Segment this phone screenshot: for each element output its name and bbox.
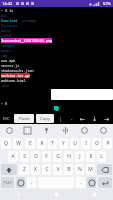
button[interactable]: Backspace <box>97 164 112 175</box>
staticText: Pictures <box>1 23 18 28</box>
button[interactable]: Y <box>59 138 68 149</box>
button[interactable]: ?123 <box>1 177 14 188</box>
button[interactable]: Shift <box>1 164 17 175</box>
staticText: P <box>106 140 110 147</box>
button[interactable]: Recents <box>75 189 113 200</box>
staticText: W <box>16 140 21 147</box>
button[interactable]: K <box>86 151 95 162</box>
button[interactable]: Voice input <box>37 124 56 137</box>
button[interactable]: Home <box>37 189 75 200</box>
button[interactable]: L <box>97 151 106 162</box>
button[interactable]: Paste <box>14 114 34 123</box>
button[interactable]: Q <box>1 138 11 149</box>
staticText: B <box>67 166 71 173</box>
staticText: R <box>40 140 44 147</box>
staticText: F <box>45 153 48 160</box>
button[interactable]: P <box>103 138 112 149</box>
button[interactable]: S <box>20 151 29 162</box>
button[interactable]: M <box>86 164 95 175</box>
staticText: Z <box>23 166 26 173</box>
staticText: Paste <box>19 116 30 122</box>
button[interactable]: R <box>37 138 46 149</box>
button[interactable]: Language <box>87 177 96 188</box>
staticText: V <box>56 166 60 173</box>
button[interactable]: W <box>13 138 23 149</box>
button[interactable]: Selection handle <box>54 106 59 111</box>
staticText: shadowsocks.json <box>1 68 34 73</box>
button[interactable]: More <box>94 124 113 137</box>
staticText: D <box>34 153 38 160</box>
button[interactable]: D <box>31 151 40 162</box>
button[interactable]: - <box>66 113 77 124</box>
button[interactable]: Settings <box>75 124 94 137</box>
staticText: storage <box>18 18 37 23</box>
staticText: → <box>104 115 110 122</box>
button[interactable]: Z <box>19 164 29 175</box>
staticText: Y <box>62 140 65 147</box>
staticText: scripts <box>1 43 16 48</box>
button[interactable]: H <box>64 151 73 162</box>
button[interactable]: Enter <box>98 177 112 188</box>
button[interactable]: C <box>42 164 51 175</box>
button[interactable]: X <box>31 164 40 175</box>
staticText: S <box>23 153 26 160</box>
staticText: server.js <box>1 63 20 68</box>
button[interactable]: N <box>75 164 84 175</box>
button[interactable]: Emoji <box>16 177 25 188</box>
staticText: tmp <box>1 53 8 58</box>
button[interactable]: E <box>25 138 35 149</box>
staticText: 52% <box>103 1 111 6</box>
button[interactable]: Translate <box>56 124 75 137</box>
staticText: ?123 <box>3 180 12 185</box>
staticText: run.apk <box>1 58 16 63</box>
button[interactable]: . <box>76 177 85 188</box>
staticText: N <box>78 166 82 173</box>
staticText: K <box>89 153 93 160</box>
staticText: Q <box>4 140 8 147</box>
button[interactable]: , <box>27 177 36 188</box>
staticText: venv <box>1 83 10 88</box>
staticText: O <box>95 140 99 147</box>
staticText: , <box>31 179 33 186</box>
staticText: ESC <box>3 116 10 121</box>
button[interactable]: J <box>75 151 84 162</box>
button[interactable]: F <box>42 151 51 162</box>
staticText: J <box>79 153 81 160</box>
staticText: 14:42 <box>2 1 13 6</box>
staticText: U <box>73 140 77 147</box>
staticText: Download <box>1 18 18 23</box>
staticText: . <box>80 179 82 186</box>
staticText: archive.tar.gz <box>1 73 30 78</box>
button[interactable]: I <box>81 138 90 149</box>
button[interactable]: G <box>53 151 62 162</box>
staticText: L <box>100 153 103 160</box>
staticText: - <box>71 116 73 122</box>
button[interactable]: B <box>64 164 73 175</box>
button[interactable]: Emoji <box>0 124 18 137</box>
button[interactable]: O <box>92 138 101 149</box>
button[interactable]: ESC <box>0 113 13 124</box>
staticText: C <box>45 166 49 173</box>
staticText: E <box>29 140 32 147</box>
button[interactable]: U <box>70 138 79 149</box>
button[interactable]: GIF <box>18 124 37 137</box>
staticText: notes <box>1 48 12 53</box>
button[interactable]: Down <box>89 113 101 124</box>
button[interactable]: Right <box>101 113 113 124</box>
staticText: ↓ <box>92 115 98 122</box>
staticText: G <box>56 153 60 160</box>
staticText: Screenshot_1591785562.png <box>1 38 52 43</box>
button[interactable]: | <box>55 113 66 124</box>
staticText: T <box>51 140 54 147</box>
staticText: webtoon.html <box>1 78 26 83</box>
button[interactable]: V <box>53 164 62 175</box>
button[interactable]: T <box>48 138 57 149</box>
button[interactable]: Left <box>77 113 89 124</box>
button[interactable]: Copy <box>36 114 54 123</box>
staticText: cache <box>1 33 12 38</box>
staticText: bin <box>1 13 8 18</box>
button[interactable]: A <box>8 151 18 162</box>
